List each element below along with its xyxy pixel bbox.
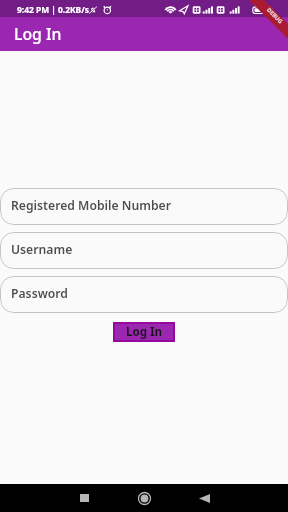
button[interactable]: Log In bbox=[113, 322, 175, 342]
staticText: Registered Mobile Number bbox=[11, 197, 171, 214]
staticText: Password bbox=[11, 285, 68, 302]
staticText: Username bbox=[11, 241, 73, 258]
button[interactable]: Username bbox=[0, 232, 288, 269]
button[interactable]: Home bbox=[114, 484, 174, 512]
staticText: Log In bbox=[14, 23, 62, 45]
button[interactable]: Recents bbox=[54, 484, 114, 512]
button[interactable]: Back bbox=[174, 484, 234, 512]
staticText: DEBUG bbox=[265, 6, 285, 26]
button[interactable]: Password bbox=[0, 276, 288, 313]
button[interactable]: Registered Mobile Number bbox=[0, 188, 288, 225]
staticText: 9:42 PM | 0.2KB/s bbox=[17, 4, 89, 15]
staticText: Log In bbox=[126, 324, 163, 340]
